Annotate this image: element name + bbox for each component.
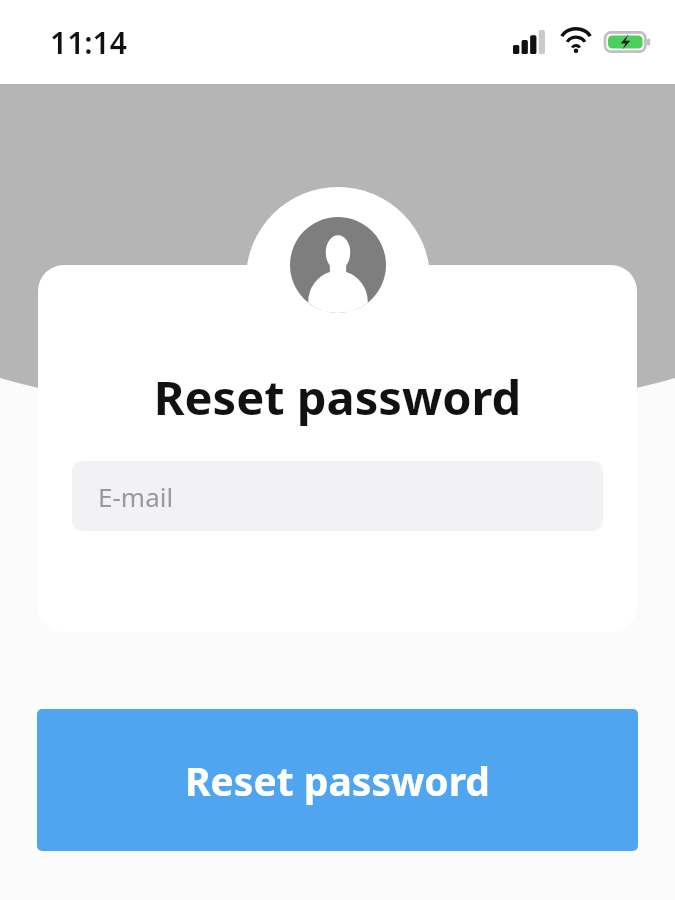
staticText: 11:14 xyxy=(50,22,127,63)
button[interactable]: E-mail xyxy=(72,461,603,531)
staticText: Reset password xyxy=(38,365,637,429)
staticText: Reset password xyxy=(185,754,491,807)
button[interactable]: Reset password xyxy=(37,709,638,851)
staticText: E-mail xyxy=(98,479,174,514)
